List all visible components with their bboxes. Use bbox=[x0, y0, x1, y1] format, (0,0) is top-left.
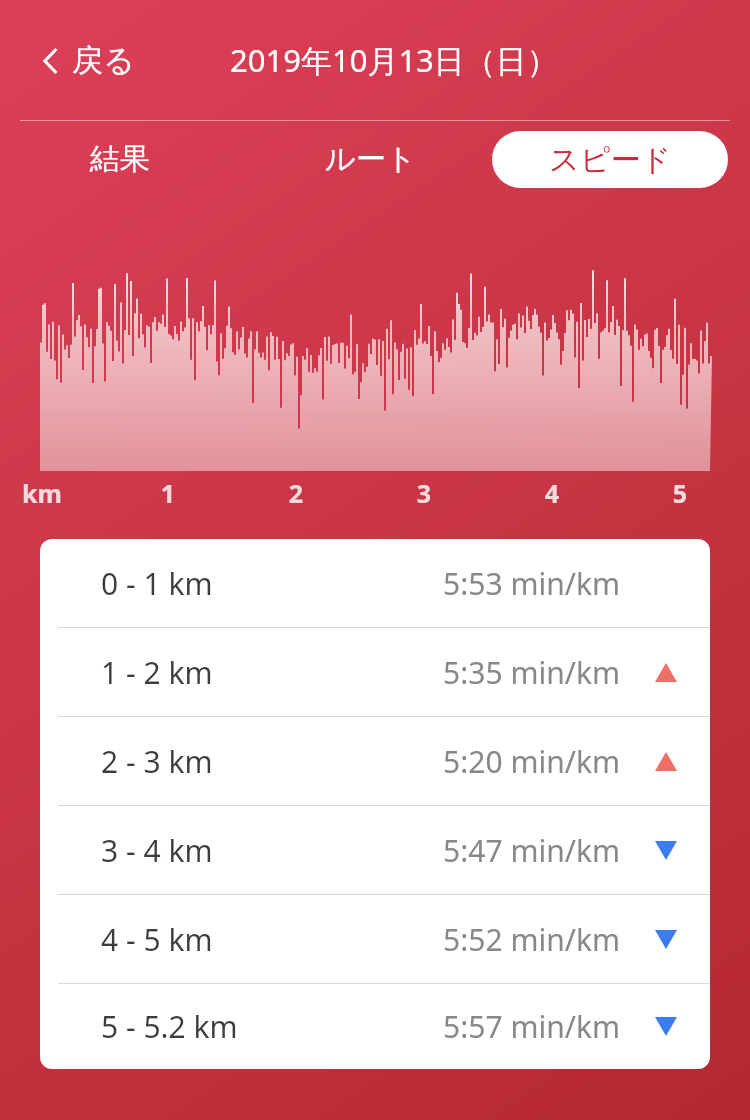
staticText: 2 - 3 km bbox=[101, 741, 213, 782]
staticText: 4 bbox=[532, 476, 572, 510]
button[interactable]: ルート bbox=[307, 132, 435, 186]
staticText: 3 - 4 km bbox=[101, 830, 213, 871]
staticText: 5:52 min/km bbox=[420, 919, 620, 960]
staticText: 5:57 min/km bbox=[420, 1006, 620, 1047]
staticText: 1 - 2 km bbox=[101, 652, 213, 693]
button[interactable]: スピード bbox=[492, 131, 728, 188]
staticText: 5:47 min/km bbox=[420, 830, 620, 871]
staticText: 戻る bbox=[72, 41, 135, 80]
staticText: 5:53 min/km bbox=[420, 563, 620, 604]
staticText: 結果 bbox=[90, 140, 150, 178]
staticText: 2019年10月13日（日） bbox=[230, 39, 558, 81]
staticText: 5 bbox=[660, 476, 700, 510]
button[interactable]: 5 - 5.2 km bbox=[40, 984, 710, 1069]
staticText: 5 - 5.2 km bbox=[101, 1006, 238, 1047]
staticText: km bbox=[22, 476, 62, 510]
staticText: 3 bbox=[404, 476, 444, 510]
staticText: 0 - 1 km bbox=[101, 563, 213, 604]
staticText: 1 bbox=[148, 476, 188, 510]
button[interactable]: 1 - 2 km bbox=[40, 628, 710, 717]
staticText: 2 bbox=[276, 476, 316, 510]
staticText: 5:20 min/km bbox=[420, 741, 620, 782]
staticText: 4 - 5 km bbox=[101, 919, 213, 960]
button[interactable]: 結果 bbox=[72, 132, 168, 186]
staticText: ルート bbox=[325, 140, 417, 178]
staticText: スピード bbox=[549, 141, 672, 179]
staticText: 5:35 min/km bbox=[420, 652, 620, 693]
button[interactable]: 4 - 5 km bbox=[40, 895, 710, 984]
button[interactable]: 戻る bbox=[30, 33, 147, 88]
button[interactable]: 0 - 1 km bbox=[40, 539, 710, 628]
button[interactable]: 2 - 3 km bbox=[40, 717, 710, 806]
button[interactable]: 3 - 4 km bbox=[40, 806, 710, 895]
